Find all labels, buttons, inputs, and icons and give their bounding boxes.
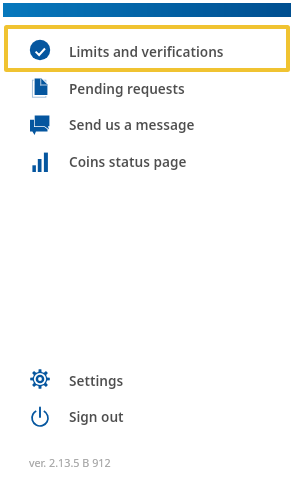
button[interactable]: Coins status page bbox=[0, 144, 295, 180]
button[interactable]: Pending requests bbox=[0, 70, 295, 106]
staticText: Settings bbox=[69, 371, 124, 390]
staticText: Send us a message bbox=[69, 115, 195, 134]
staticText: Pending requests bbox=[69, 79, 185, 98]
button[interactable]: Sign out bbox=[0, 399, 295, 435]
button[interactable]: Settings bbox=[0, 361, 295, 397]
button[interactable]: Limits and verifications bbox=[0, 32, 295, 68]
button[interactable]: Send us a message bbox=[0, 107, 295, 143]
staticText: Coins status page bbox=[69, 152, 187, 171]
staticText: Limits and verifications bbox=[69, 42, 224, 61]
staticText: Sign out bbox=[69, 407, 124, 426]
staticText: ver. 2.13.5 B 912 bbox=[29, 455, 111, 470]
